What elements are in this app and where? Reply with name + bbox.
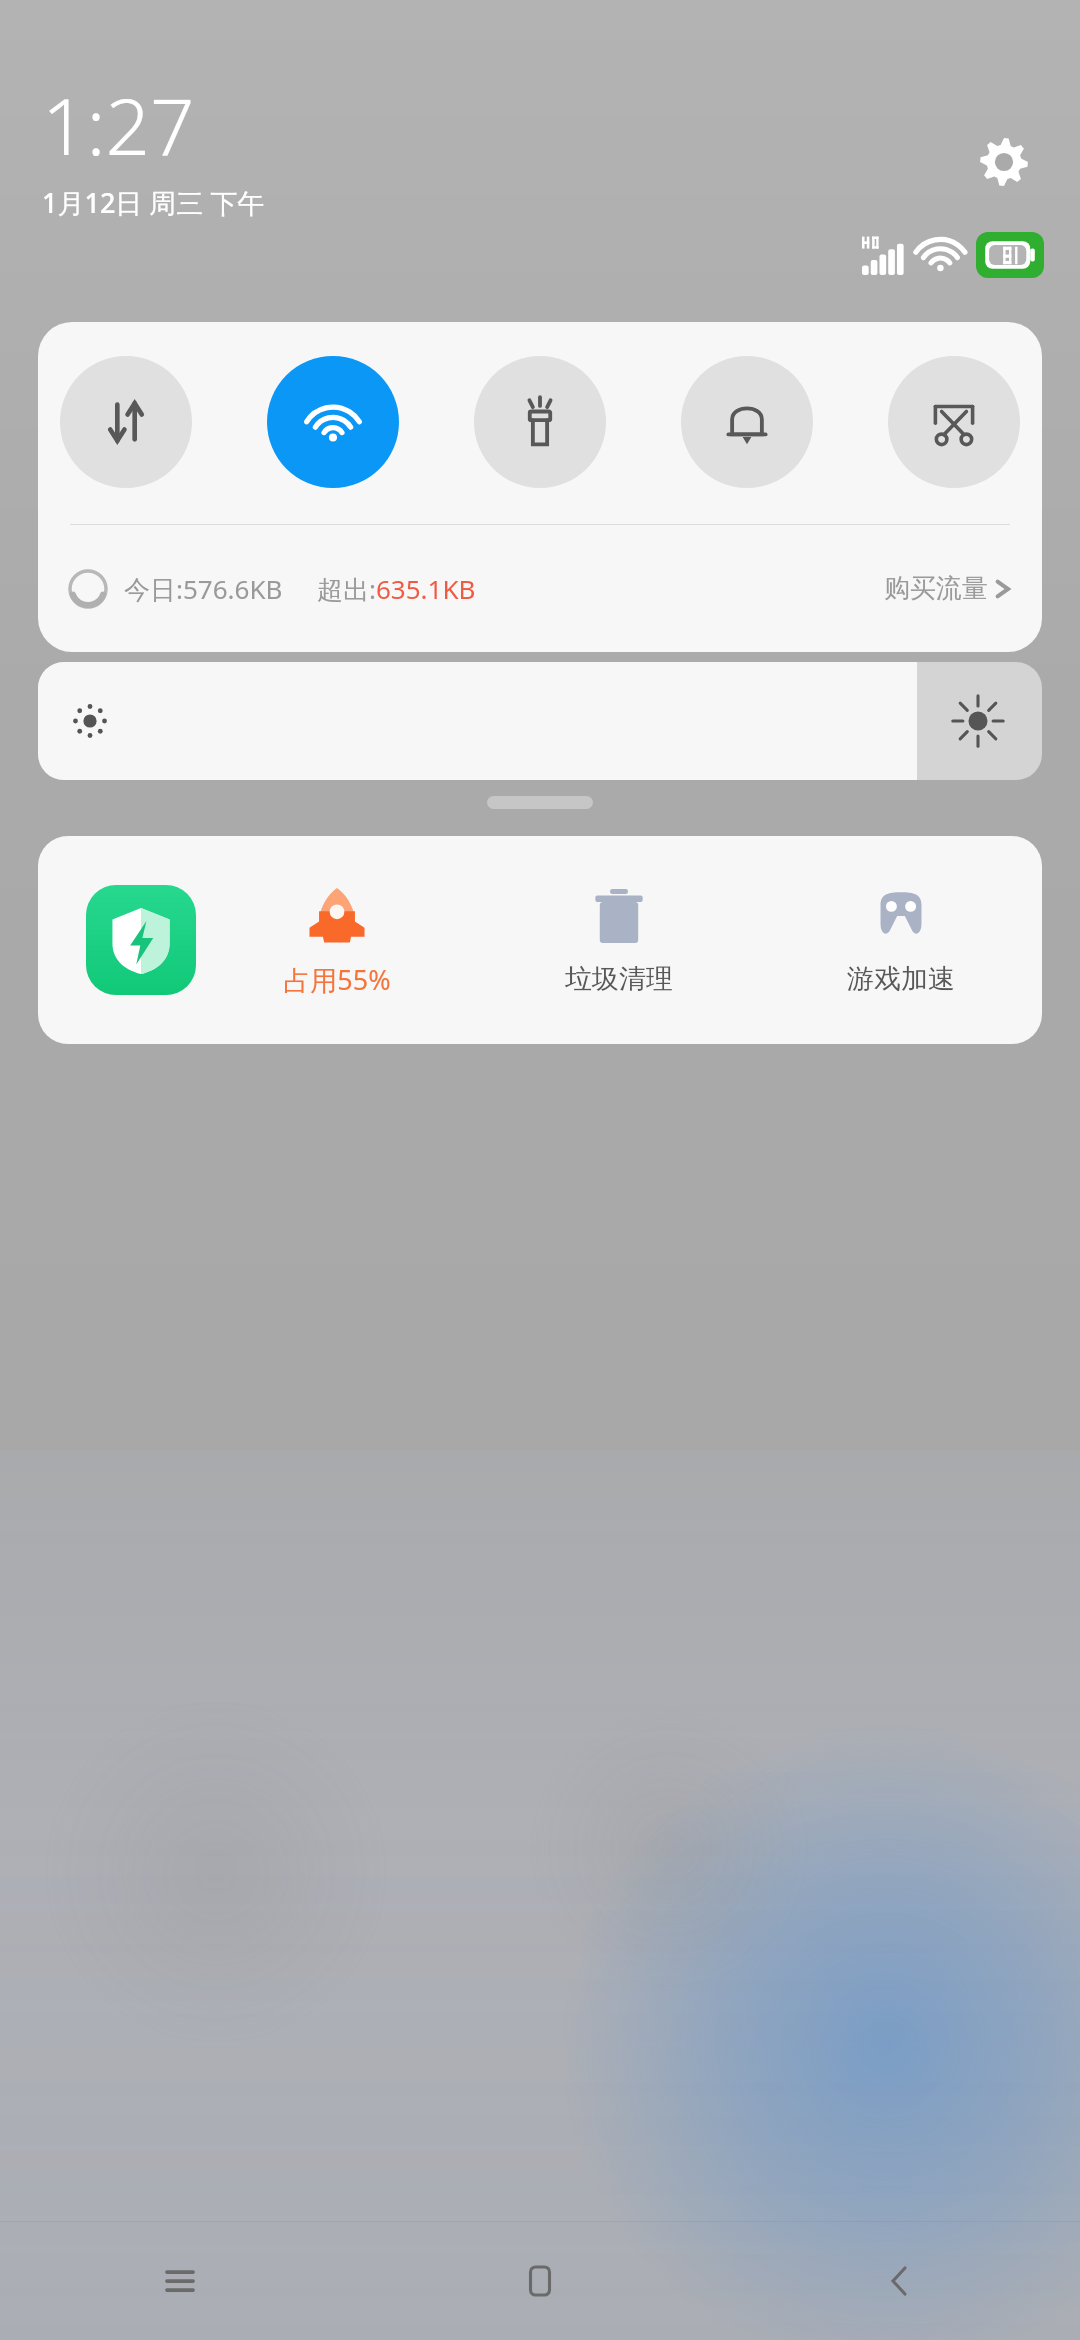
- staticText: 垃圾清理: [565, 962, 673, 996]
- button[interactable]: 今日:576.6KB: [38, 525, 1042, 652]
- button[interactable]: Security: [86, 885, 196, 995]
- staticText: 1:27: [42, 72, 195, 178]
- button[interactable]: Flashlight: [474, 356, 606, 488]
- staticText: 今日:576.6KB: [124, 571, 283, 607]
- button[interactable]: Brightness: [38, 662, 1042, 780]
- staticText: 635.1KB: [376, 571, 476, 606]
- staticText: 1月12日 周三 下午: [42, 184, 265, 221]
- button[interactable]: 垃圾清理: [478, 836, 760, 1044]
- staticText: 占用55%: [283, 961, 391, 998]
- staticText: 购买流量: [884, 572, 988, 605]
- staticText: 超出:: [317, 571, 376, 607]
- button[interactable]: 游戏加速: [760, 836, 1042, 1044]
- button[interactable]: Home: [360, 2222, 720, 2340]
- button[interactable]: Settings: [972, 130, 1036, 194]
- button[interactable]: Recents: [0, 2222, 360, 2340]
- button[interactable]: Screenshot: [888, 356, 1020, 488]
- button[interactable]: Mobile data: [60, 356, 192, 488]
- button[interactable]: Back: [720, 2222, 1080, 2340]
- button[interactable]: Expand: [487, 796, 593, 809]
- button[interactable]: 占用55%: [196, 836, 478, 1044]
- button[interactable]: Ringer: [681, 356, 813, 488]
- button[interactable]: Wi-Fi: [267, 356, 399, 488]
- staticText: 游戏加速: [847, 962, 955, 996]
